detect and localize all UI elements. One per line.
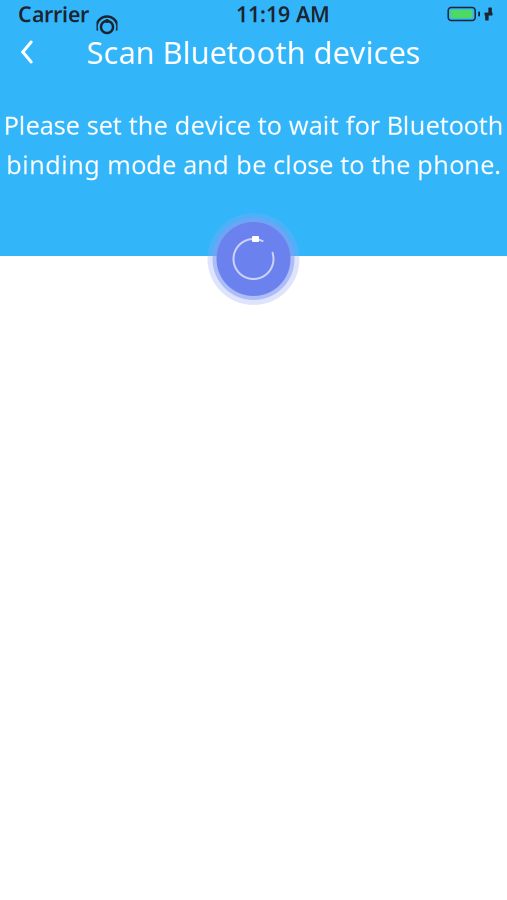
staticText: 11:19 AM [236,0,330,28]
staticText: binding mode and be close to the phone. [6,148,501,181]
button[interactable]: Back [0,28,54,76]
staticText: Please set the device to wait for Blueto… [3,108,503,142]
staticText: Carrier [18,0,89,28]
staticText: Scan Bluetooth devices [86,32,420,72]
